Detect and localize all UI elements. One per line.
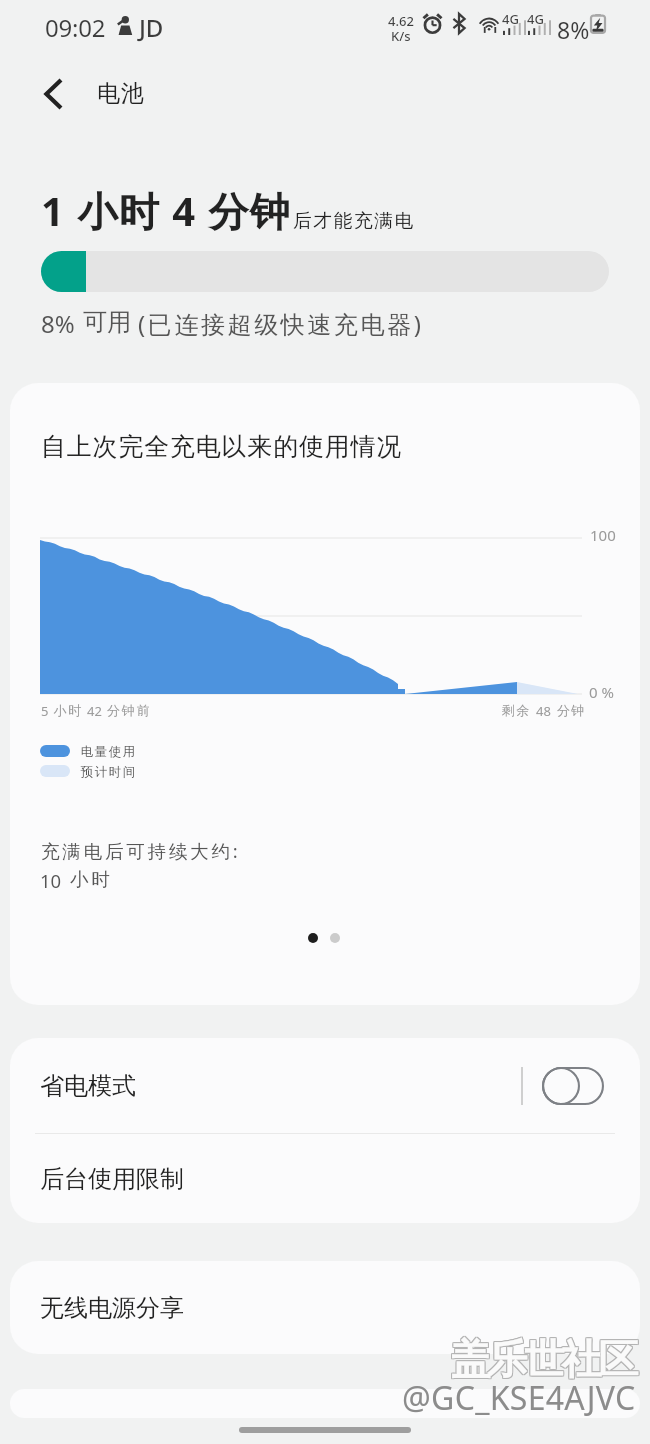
staticText: 5 [41, 702, 49, 720]
staticText: 盖乐世社区 [451, 1335, 636, 1385]
staticText: 可用 [83, 307, 131, 337]
staticText: 充满电后可持续大约: [41, 838, 241, 863]
staticText: 100 [590, 525, 616, 545]
staticText: 小时 [70, 868, 113, 891]
staticText: 09:02 [45, 11, 106, 44]
staticText: 盖乐世社区 [453, 1334, 638, 1384]
button[interactable]: 后台使用限制 [10, 1134, 640, 1223]
staticText: 省电模式 [40, 1071, 136, 1101]
staticText: JD [139, 11, 164, 44]
staticText: 48 [536, 702, 551, 720]
staticText: 盖乐世社区 [451, 1333, 636, 1383]
staticText: 4G [527, 10, 544, 28]
staticText: 无线电源分享 [40, 1293, 184, 1323]
staticText: 盖乐世社区 [452, 1333, 637, 1383]
staticText: 盖乐世社区 [452, 1334, 637, 1384]
staticText: K/s [391, 27, 411, 45]
staticText: 1 小时 4 分钟 [41, 183, 292, 238]
staticText: 0 % [589, 682, 614, 702]
staticText: 4G [502, 10, 519, 28]
staticText: 盖乐世社区 [451, 1334, 636, 1384]
staticText: 预计时间 [80, 764, 136, 780]
staticText: 8% [41, 307, 75, 340]
staticText: 剩余 [502, 702, 531, 718]
staticText: 分钟前 [107, 702, 152, 718]
staticText: 分钟 [557, 702, 586, 718]
staticText: 42 [87, 702, 102, 720]
staticText: 后台使用限制 [40, 1164, 184, 1194]
button[interactable]: Back [26, 68, 82, 120]
staticText: 盖乐世社区 [453, 1335, 638, 1385]
staticText: 后才能充满电 [293, 209, 415, 232]
staticText: 8% [557, 14, 590, 45]
staticText: 盖乐世社区 [453, 1333, 638, 1383]
staticText: 自上次完全充电以来的使用情况 [41, 431, 403, 462]
button[interactable]: Power saving mode toggle [542, 1067, 604, 1105]
staticText: 小时 [53, 702, 82, 718]
staticText: (已连接超级快速充电器) [138, 307, 424, 340]
button[interactable]: 省电模式 [10, 1038, 640, 1133]
button[interactable]: 无线电源分享 [10, 1261, 640, 1354]
staticText: 10 [40, 868, 62, 893]
staticText: 电池 [97, 79, 145, 108]
staticText: 4.62 [388, 12, 414, 30]
staticText: 电量使用 [80, 744, 136, 760]
staticText: 盖乐世社区 [452, 1335, 637, 1385]
staticText: @GC_KSE4AJVC [402, 1376, 636, 1420]
